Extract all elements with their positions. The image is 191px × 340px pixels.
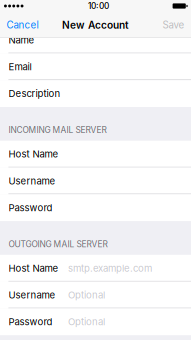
staticText: Optional	[68, 289, 105, 301]
staticText: Name	[8, 34, 34, 46]
button[interactable]: Description	[0, 80, 191, 107]
button[interactable]: Username	[0, 282, 191, 308]
staticText: Optional	[68, 316, 105, 328]
staticText: Host Name	[8, 148, 58, 160]
button[interactable]: Cancel	[0, 12, 45, 38]
button[interactable]: Save	[156, 12, 191, 38]
staticText: Email	[8, 61, 31, 73]
staticText: 10:00	[88, 1, 109, 11]
staticText: Username	[8, 289, 55, 301]
button[interactable]: Name	[0, 27, 191, 53]
staticText: smtp.example.com	[68, 262, 152, 274]
staticText: INCOMING MAIL SERVER	[8, 125, 106, 135]
staticText: Host Name	[8, 262, 58, 274]
staticText: OUTGOING MAIL SERVER	[8, 239, 107, 249]
button[interactable]: Password	[0, 308, 191, 335]
button[interactable]: Email	[0, 53, 191, 80]
staticText: Password	[8, 202, 52, 213]
staticText: Username	[8, 175, 55, 187]
staticText: Save	[162, 19, 184, 31]
button[interactable]: Username	[0, 167, 191, 194]
button[interactable]: Password	[0, 194, 191, 221]
staticText: Password	[8, 316, 52, 328]
staticText: Description	[8, 88, 60, 99]
button[interactable]: Host Name	[0, 255, 191, 282]
staticText: New Account	[62, 19, 129, 31]
button[interactable]: Host Name	[0, 141, 191, 167]
staticText: Cancel	[7, 19, 39, 31]
